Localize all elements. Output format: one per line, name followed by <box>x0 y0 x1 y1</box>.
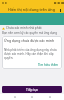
staticText: Bạn nên xem kỹ các quyền mà ứng dụng này… <box>2 31 62 35</box>
button[interactable]: Back <box>12 94 18 100</box>
staticText: Ứng dụng chưa được xác minh <box>4 38 55 43</box>
button[interactable]: Recent apps <box>47 94 53 100</box>
staticText: Hiển thị nội dung trên ứng <box>8 7 55 12</box>
staticText: Tiếp tục <box>26 88 39 92</box>
button[interactable]: More options <box>58 8 62 12</box>
staticText: Nhà phát triển của ứng dụng này chưa đượ… <box>4 48 60 60</box>
staticText: Chưa xác minh nhà phát <box>6 26 42 30</box>
button[interactable]: Tiếp tục <box>2 86 62 93</box>
button[interactable]: Tìm hiểu thêm <box>37 63 60 67</box>
staticText: Tìm hiểu thêm <box>38 63 59 67</box>
button[interactable]: Home <box>29 94 35 100</box>
